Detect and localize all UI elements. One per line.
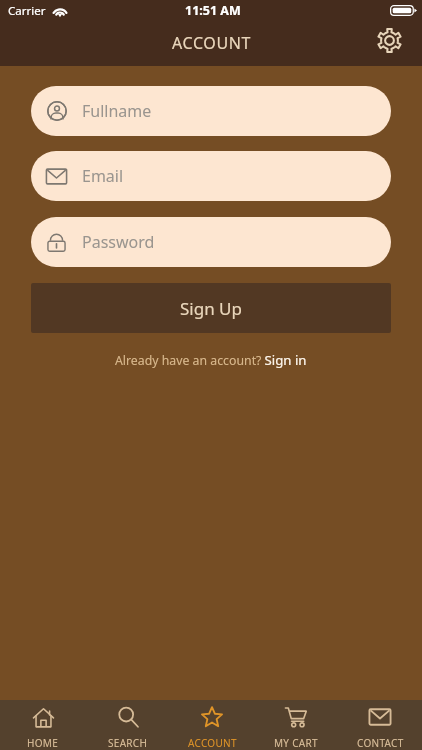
button[interactable]: Password bbox=[31, 217, 391, 267]
staticText: Password bbox=[82, 231, 155, 253]
staticText: ACCOUNT bbox=[188, 736, 237, 750]
staticText: MY CART bbox=[274, 736, 318, 750]
button[interactable]: MY CART bbox=[254, 700, 338, 750]
staticText: Sign Up bbox=[180, 297, 242, 320]
button[interactable]: Already have an account? Sign in bbox=[115, 351, 307, 369]
staticText: 11:51 AM bbox=[185, 2, 241, 19]
button[interactable]: Fullname bbox=[31, 86, 391, 136]
button[interactable]: SEARCH bbox=[85, 700, 170, 750]
staticText: ACCOUNT bbox=[172, 32, 251, 54]
button[interactable]: Email bbox=[31, 151, 391, 201]
staticText: CONTACT bbox=[357, 736, 404, 750]
button[interactable]: HOME bbox=[0, 700, 85, 750]
button[interactable]: CONTACT bbox=[338, 700, 422, 750]
staticText: HOME bbox=[27, 736, 59, 750]
staticText: Email bbox=[82, 165, 124, 187]
staticText: Carrier bbox=[8, 3, 46, 19]
button[interactable]: Sign Up bbox=[31, 283, 391, 333]
staticText: SEARCH bbox=[108, 736, 148, 750]
staticText: Fullname bbox=[82, 100, 152, 122]
button[interactable]: ACCOUNT bbox=[170, 700, 254, 750]
button[interactable]: Settings bbox=[372, 23, 406, 57]
